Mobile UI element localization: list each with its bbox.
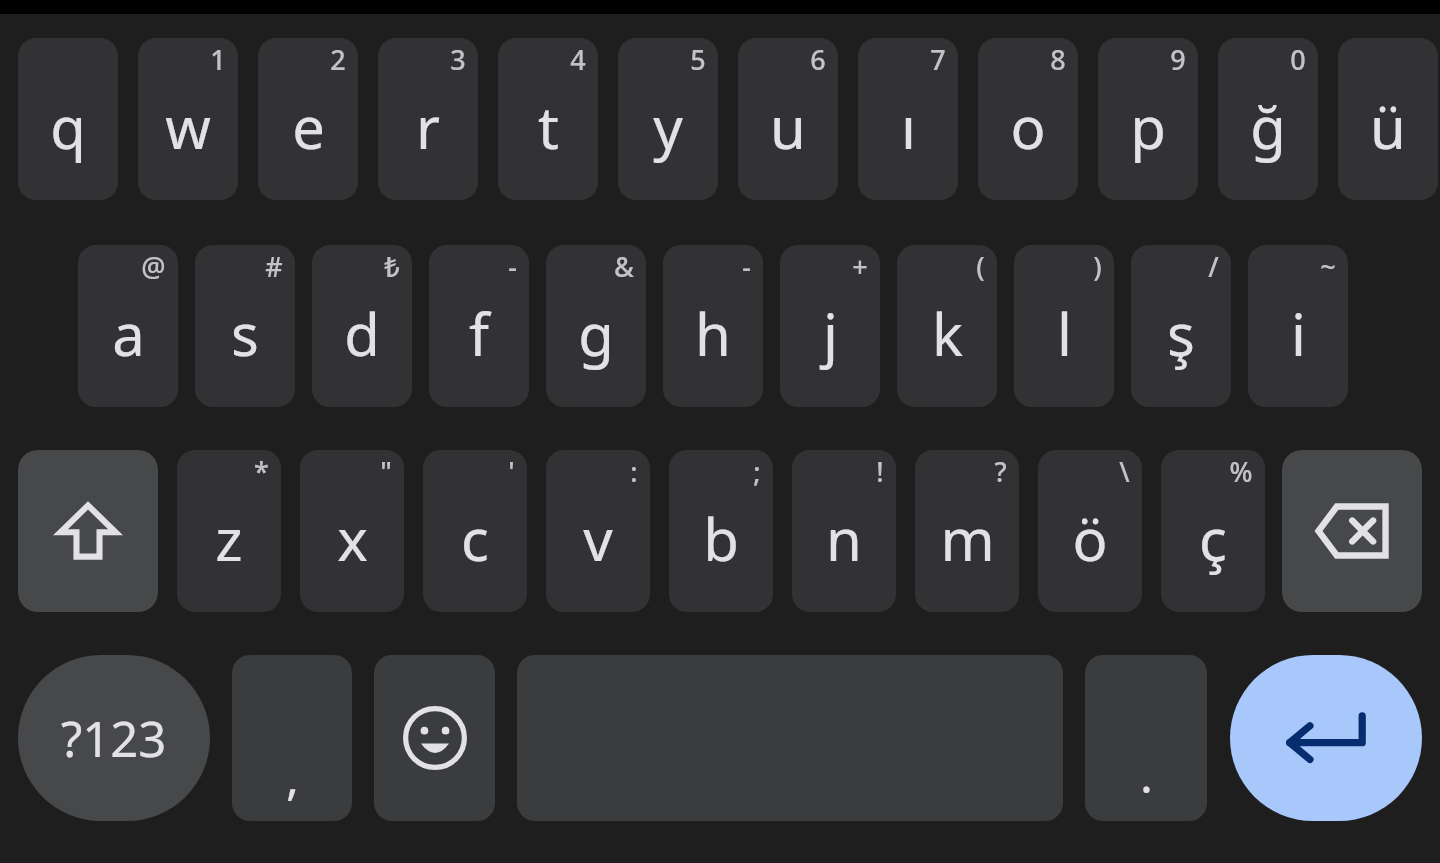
button[interactable]: w (138, 38, 238, 200)
staticText: ç (1199, 499, 1227, 578)
button[interactable]: ş (1131, 245, 1231, 407)
staticText: h (695, 294, 731, 373)
staticText: ? (994, 453, 1007, 490)
staticText: r (416, 87, 440, 166)
staticText: , (286, 744, 299, 809)
staticText: 9 (1170, 41, 1186, 78)
staticText: ö (1072, 499, 1108, 578)
button[interactable]: e (258, 38, 358, 200)
button[interactable]: , (232, 655, 352, 821)
staticText: n (826, 499, 862, 578)
button[interactable]: Backspace (1282, 450, 1422, 612)
button[interactable]: j (780, 245, 880, 407)
staticText: 4 (570, 41, 586, 78)
staticText: m (940, 499, 995, 578)
staticText: @ (141, 248, 166, 285)
button[interactable]: o (978, 38, 1078, 200)
staticText: 7 (930, 41, 946, 78)
staticText: w (165, 87, 211, 166)
staticText: 5 (690, 41, 706, 78)
staticText: - (742, 248, 751, 285)
button[interactable]: p (1098, 38, 1198, 200)
staticText: y (653, 87, 683, 166)
staticText: - (508, 248, 517, 285)
staticText: f (469, 294, 489, 373)
button[interactable]: b (669, 450, 773, 612)
button[interactable]: n (792, 450, 896, 612)
staticText: ' (508, 453, 515, 490)
button[interactable]: y (618, 38, 718, 200)
staticText: o (1010, 87, 1046, 166)
staticText: u (770, 87, 806, 166)
button[interactable]: g (546, 245, 646, 407)
button[interactable]: Emoji (374, 655, 495, 821)
button[interactable]: s (195, 245, 295, 407)
staticText: 1 (210, 41, 226, 78)
staticText: ; (753, 453, 761, 490)
staticText: j (823, 294, 838, 373)
staticText: 3 (450, 41, 466, 78)
button[interactable]: a (78, 245, 178, 407)
button[interactable]: m (915, 450, 1019, 612)
staticText: * (254, 453, 269, 490)
button[interactable]: ?123 (18, 655, 210, 821)
button[interactable]: i (1248, 245, 1348, 407)
button[interactable]: l (1014, 245, 1114, 407)
button[interactable]: t (498, 38, 598, 200)
button[interactable]: . (1085, 655, 1207, 821)
staticText: ş (1167, 294, 1195, 373)
button[interactable]: k (897, 245, 997, 407)
button[interactable]: r (378, 38, 478, 200)
staticText: q (50, 87, 86, 166)
staticText: p (1130, 87, 1166, 166)
staticText: \ (1119, 453, 1130, 490)
staticText: : (630, 453, 638, 490)
staticText: ! (876, 453, 884, 490)
staticText: ) (1093, 248, 1102, 285)
button[interactable]: ı (858, 38, 958, 200)
staticText: b (703, 499, 739, 578)
button[interactable]: ğ (1218, 38, 1318, 200)
staticText: % (1229, 453, 1253, 490)
button[interactable]: ü (1338, 38, 1438, 200)
staticText: ₺ (384, 248, 400, 285)
staticText: x (337, 499, 368, 578)
staticText: ğ (1250, 87, 1286, 166)
staticText: a (112, 294, 145, 373)
staticText: ü (1370, 87, 1406, 166)
staticText: + (852, 248, 868, 285)
staticText: 6 (810, 41, 826, 78)
staticText: i (1291, 294, 1306, 373)
button[interactable]: f (429, 245, 529, 407)
staticText: t (538, 87, 559, 166)
staticText: d (344, 294, 380, 373)
staticText: e (292, 87, 325, 166)
staticText: 0 (1290, 41, 1306, 78)
staticText: g (578, 294, 614, 373)
button[interactable]: d (312, 245, 412, 407)
button[interactable]: ç (1161, 450, 1265, 612)
button[interactable]: Enter (1230, 655, 1422, 821)
staticText: & (614, 248, 634, 285)
button[interactable]: q (18, 38, 118, 200)
staticText: 8 (1050, 41, 1066, 78)
staticText: " (380, 453, 392, 490)
button[interactable]: h (663, 245, 763, 407)
staticText: . (1140, 742, 1153, 807)
button[interactable]: u (738, 38, 838, 200)
staticText: z (215, 499, 243, 578)
button[interactable]: z (177, 450, 281, 612)
button[interactable]: x (300, 450, 404, 612)
staticText: c (461, 499, 489, 578)
staticText: s (231, 294, 259, 373)
button[interactable]: c (423, 450, 527, 612)
button[interactable]: ö (1038, 450, 1142, 612)
staticText: k (932, 294, 963, 373)
button[interactable]: Shift (18, 450, 158, 612)
staticText: ?123 (61, 705, 167, 772)
button[interactable]: v (546, 450, 650, 612)
staticText: / (1208, 248, 1219, 285)
staticText: ~ (1320, 248, 1336, 285)
staticText: v (583, 499, 613, 578)
